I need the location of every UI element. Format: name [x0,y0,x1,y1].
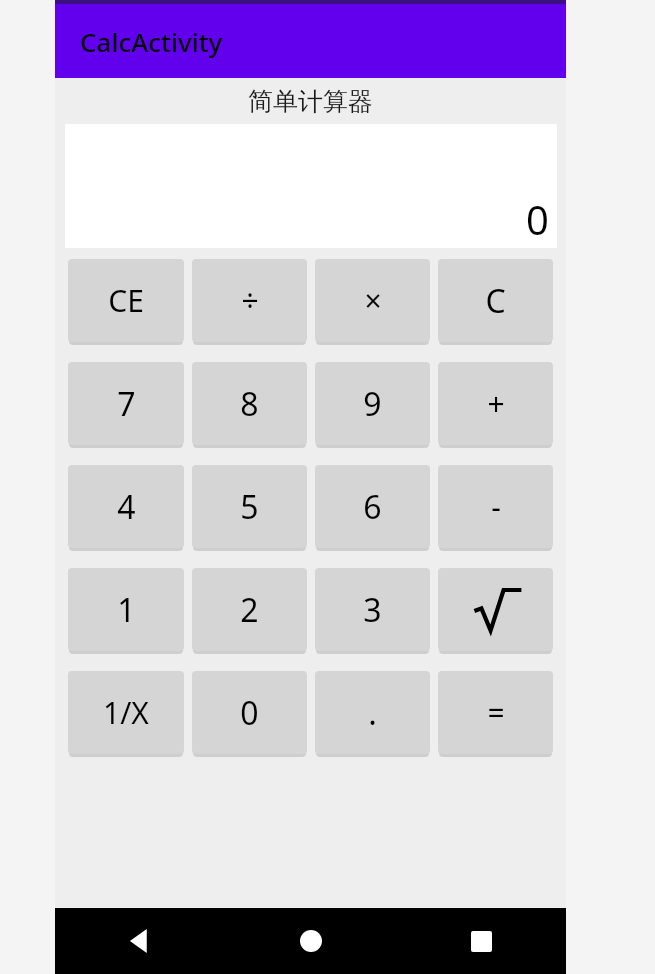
other: Square root [469,583,523,637]
staticText: ÷ [241,280,259,321]
staticText: 0 [240,691,259,735]
button[interactable]: 5 [192,465,307,548]
staticText: 6 [363,485,382,529]
button[interactable]: CE [68,259,184,342]
button[interactable]: 8 [192,362,307,445]
staticText: 1/X [103,692,149,733]
button[interactable]: 4 [68,465,184,548]
staticText: 5 [240,485,259,529]
staticText: 8 [240,382,259,426]
button[interactable]: ÷ [192,259,307,342]
staticText: 4 [117,485,136,529]
button[interactable]: = [438,671,553,754]
staticText: CE [108,280,144,321]
staticText: = [487,692,505,733]
staticText: + [487,383,505,424]
staticText: 3 [363,588,382,632]
staticText: - [491,486,501,527]
button[interactable]: Recent apps [449,909,513,973]
button[interactable]: Back [108,909,172,973]
staticText: CalcActivity [80,24,223,59]
button[interactable]: - [438,465,553,548]
staticText: C [485,279,506,323]
staticText: . [368,691,377,735]
button[interactable]: Home [279,909,343,973]
button[interactable]: C [438,259,553,342]
button[interactable]: + [438,362,553,445]
button[interactable]: Square root [438,568,553,651]
staticText: 0 [526,192,549,246]
staticText: × [364,280,382,321]
button[interactable]: 1/X [68,671,184,754]
button[interactable]: × [315,259,430,342]
button[interactable]: 7 [68,362,184,445]
button[interactable]: 1 [68,568,184,651]
button[interactable]: 3 [315,568,430,651]
staticText: 7 [117,382,136,426]
button[interactable]: 6 [315,465,430,548]
staticText: 1 [117,588,136,632]
staticText: 9 [363,382,382,426]
button[interactable]: . [315,671,430,754]
staticText: 2 [240,588,259,632]
button[interactable]: 0 [192,671,307,754]
button[interactable]: 9 [315,362,430,445]
button[interactable]: 2 [192,568,307,651]
staticText: 简单计算器 [248,86,373,117]
